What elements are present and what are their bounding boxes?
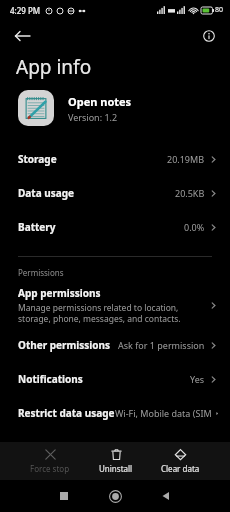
staticText: Yes [190, 373, 205, 385]
staticText: 20.5KB [175, 187, 205, 199]
staticText: Permissions [18, 267, 64, 278]
staticText: 0.0% [184, 221, 205, 233]
button[interactable]: About [196, 23, 222, 49]
staticText: 80 [215, 5, 224, 15]
button[interactable]: Recents [52, 484, 76, 508]
staticText: App info [16, 54, 92, 80]
button[interactable]: Battery [0, 210, 230, 244]
staticText: Battery [18, 220, 56, 234]
staticText: Wi-Fi, Mobile data (SIM [115, 407, 212, 419]
staticText: Other permissions [18, 338, 111, 352]
button[interactable]: Force stop [28, 448, 72, 474]
staticText: 20.19MB [167, 153, 205, 165]
staticText: Ask for 1 permission [118, 339, 205, 351]
staticText: Uninstall [99, 463, 133, 474]
staticText: Clear data [161, 463, 200, 474]
staticText: Version: 1.2 [68, 111, 118, 123]
staticText: Data usage [18, 186, 75, 200]
button[interactable]: Other permissions [0, 328, 230, 362]
button[interactable]: Storage [0, 142, 230, 176]
button[interactable]: Uninstall [97, 448, 135, 474]
staticText: Restrict data usage [18, 406, 115, 420]
button[interactable]: Data usage [0, 176, 230, 210]
staticText: Open notes [68, 94, 132, 109]
button[interactable]: Notifications [0, 362, 230, 396]
button[interactable]: Back [154, 484, 178, 508]
staticText: Storage [18, 152, 57, 166]
button[interactable]: Back [8, 22, 36, 50]
staticText: App permissions [18, 286, 101, 300]
button[interactable]: Clear data [159, 448, 202, 474]
button[interactable]: Open notes [18, 90, 230, 126]
staticText: Notifications [18, 372, 83, 386]
button[interactable]: App permissions [0, 284, 230, 328]
staticText: Force stop [30, 463, 70, 474]
button[interactable]: Restrict data usage [0, 396, 230, 430]
button[interactable]: Home [103, 484, 127, 508]
staticText: 4:29 PM [10, 5, 41, 16]
staticText: Manage permissions related to location, … [18, 302, 203, 324]
